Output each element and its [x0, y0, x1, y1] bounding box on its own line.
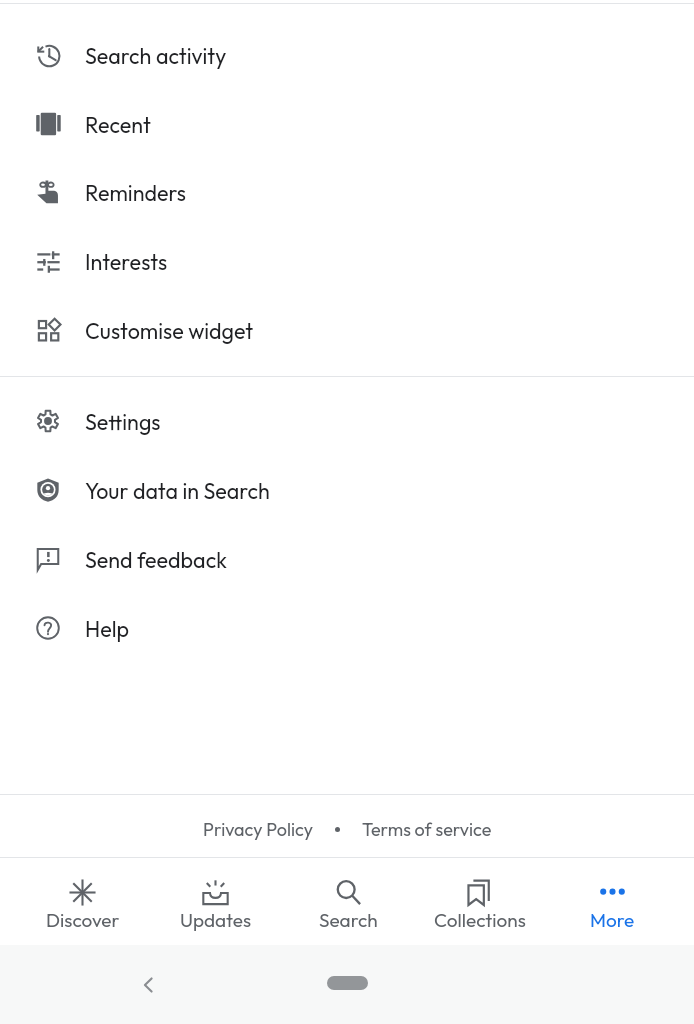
staticText: Your data in Search: [85, 477, 270, 504]
button[interactable]: Reminders: [0, 158, 694, 226]
staticText: Interests: [85, 248, 168, 275]
staticText: More: [590, 908, 635, 932]
staticText: Send feedback: [85, 546, 227, 573]
staticText: Privacy Policy: [203, 818, 313, 841]
staticText: Terms of service: [362, 818, 492, 841]
button[interactable]: More: [546, 858, 678, 945]
staticText: Collections: [434, 908, 526, 932]
button[interactable]: Recent: [0, 90, 694, 158]
button[interactable]: Your data in Search: [0, 456, 694, 524]
button[interactable]: Search: [282, 858, 414, 945]
button[interactable]: Discover: [16, 858, 149, 945]
staticText: Updates: [180, 908, 252, 932]
staticText: Help: [85, 615, 129, 642]
button[interactable]: Home: [317, 961, 377, 1005]
staticText: Settings: [85, 408, 161, 435]
staticText: Search: [319, 908, 378, 932]
button[interactable]: Terms of service: [359, 812, 495, 847]
staticText: Customise widget: [85, 317, 254, 344]
button[interactable]: Customise widget: [0, 296, 694, 364]
button[interactable]: Interests: [0, 227, 694, 295]
button[interactable]: Settings: [0, 387, 694, 455]
button[interactable]: Privacy Policy: [200, 812, 316, 847]
button[interactable]: Back: [125, 963, 169, 1007]
button[interactable]: Help: [0, 594, 694, 662]
button[interactable]: Search activity: [0, 21, 694, 89]
button[interactable]: Send feedback: [0, 525, 694, 593]
staticText: Recent: [85, 111, 151, 138]
staticText: Discover: [46, 908, 120, 932]
button[interactable]: Collections: [414, 858, 546, 945]
staticText: Search activity: [85, 42, 227, 69]
button[interactable]: Updates: [149, 858, 282, 945]
staticText: Reminders: [85, 179, 187, 206]
